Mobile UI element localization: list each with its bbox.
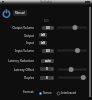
button[interactable]: Slider [58, 75, 87, 80]
staticText: Gx-Guitar [40, 0, 53, 4]
staticText: I/O [44, 19, 49, 23]
staticText: 0.0 [46, 49, 50, 53]
button[interactable]: 0.0 [42, 49, 54, 53]
staticText: Interleaved [61, 91, 77, 95]
button[interactable]: Stereo [39, 91, 52, 95]
staticText: left [41, 41, 45, 45]
button[interactable]: Slider [57, 48, 87, 53]
button[interactable]: Slider [57, 25, 87, 30]
staticText: 0.0 [46, 26, 50, 30]
button[interactable]: Interleaved [57, 91, 77, 95]
staticText: Latency Reduction [8, 59, 34, 63]
staticText: Output [23, 34, 34, 38]
button[interactable]: 0 [40, 67, 54, 71]
staticText: Duplex [24, 76, 34, 80]
button[interactable]: Slider [58, 67, 87, 72]
staticText: left [41, 33, 45, 37]
button[interactable]: left [39, 33, 47, 37]
button[interactable]: auto [41, 59, 54, 63]
staticText: auto [45, 59, 51, 63]
button[interactable]: 0.0 [42, 26, 54, 30]
staticText: Stereo [43, 91, 52, 95]
staticText: Input Volume [14, 49, 34, 53]
staticText: 0 [46, 76, 48, 80]
staticText: Manual [15, 11, 25, 15]
button[interactable]: Manual [13, 10, 27, 16]
staticText: Latency Offset [13, 68, 34, 72]
staticText: Format: [23, 90, 34, 94]
button[interactable]: Power [2, 9, 11, 18]
button[interactable]: 0 [40, 76, 54, 80]
button[interactable]: left [39, 41, 47, 45]
staticText: Output Volume [12, 26, 34, 30]
staticText: Input [26, 41, 34, 45]
staticText: 0 [46, 67, 48, 71]
